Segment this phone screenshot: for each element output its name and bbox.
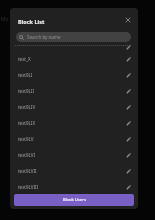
button[interactable]: Edit	[123, 166, 133, 176]
button[interactable]: test9LVIII	[10, 179, 138, 195]
button[interactable]: test9LIV	[10, 99, 138, 115]
button[interactable]: Edit	[123, 150, 133, 160]
staticText: test9LVII	[18, 168, 37, 174]
staticText: Search by name	[27, 34, 61, 40]
staticText: Block List	[18, 18, 45, 25]
button[interactable]: Search by name	[16, 32, 131, 42]
button[interactable]: Close	[121, 13, 135, 27]
staticText: test9LII	[18, 88, 34, 94]
button[interactable]: test9LVI	[10, 147, 138, 163]
button[interactable]: Edit	[123, 70, 133, 80]
button[interactable]: Edit	[123, 86, 133, 96]
button[interactable]: Edit	[123, 182, 133, 192]
staticText: test9LVI	[18, 152, 36, 158]
staticText: Block Users	[63, 197, 86, 203]
staticText: test9LVIII	[18, 184, 39, 190]
staticText: My	[1, 16, 9, 23]
button[interactable]: test9LII	[10, 83, 138, 99]
button[interactable]: Edit	[123, 118, 133, 128]
button[interactable]: Edit	[123, 54, 133, 64]
staticText: test9LI	[18, 72, 33, 78]
staticText: test_X	[18, 56, 31, 62]
button[interactable]: test9LV	[10, 131, 138, 147]
button[interactable]: Edit	[123, 102, 133, 112]
button[interactable]: test9LIX	[10, 115, 138, 131]
staticText: test9LIV	[18, 104, 36, 110]
button[interactable]: test9LVII	[10, 163, 138, 179]
button[interactable]: test9LI	[10, 67, 138, 83]
staticText: test9LIX	[18, 120, 36, 126]
button[interactable]: Block Users	[14, 194, 134, 206]
staticText: test9LV	[18, 136, 34, 142]
button[interactable]: Edit	[123, 134, 133, 144]
button[interactable]: Edit	[123, 42, 133, 52]
button[interactable]: test_X	[10, 51, 138, 67]
